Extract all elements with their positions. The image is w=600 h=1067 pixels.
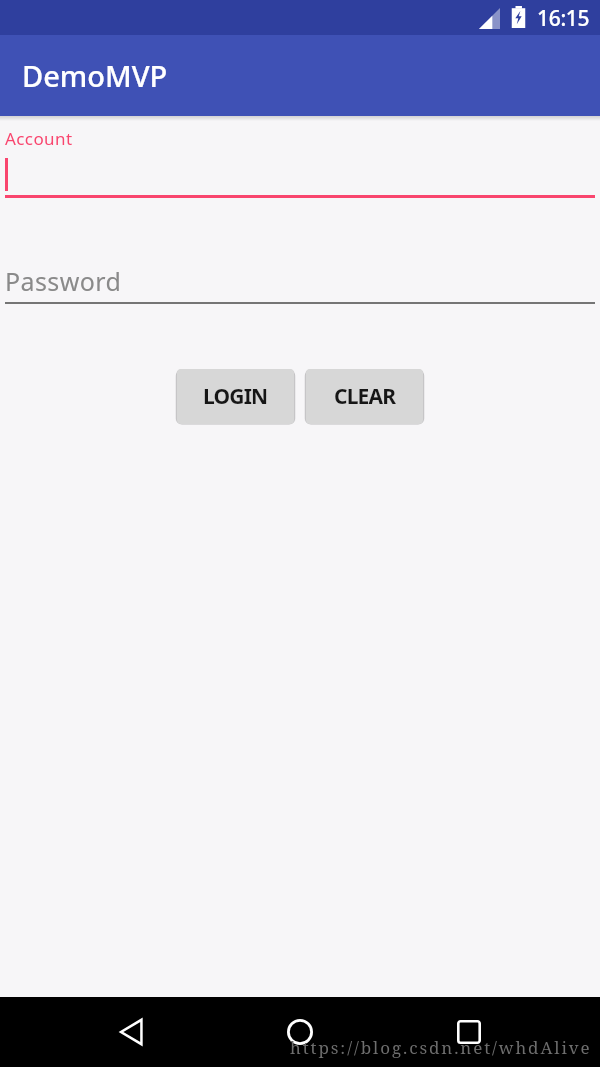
staticText: Password <box>5 264 122 298</box>
button[interactable]: Back <box>107 1008 155 1056</box>
staticText: DemoMVP <box>22 56 168 95</box>
button[interactable]: Account <box>0 128 600 214</box>
button[interactable]: LOGIN <box>175 366 296 427</box>
button[interactable]: Password <box>0 264 600 308</box>
staticText: 16:15 <box>537 4 590 33</box>
staticText: CLEAR <box>334 382 396 411</box>
staticText: Account <box>5 127 73 150</box>
button[interactable]: Home <box>276 1008 324 1056</box>
button[interactable]: CLEAR <box>304 366 425 427</box>
button[interactable]: Recent apps <box>445 1008 493 1056</box>
staticText: LOGIN <box>203 382 268 411</box>
staticText: https://blog.csdn.net/whdAlive <box>290 1036 592 1059</box>
